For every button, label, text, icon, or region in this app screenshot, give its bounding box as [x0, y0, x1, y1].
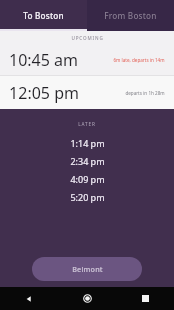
staticText: 4:09 pm [70, 173, 105, 185]
button[interactable]: Back [0, 287, 58, 310]
staticText: 5:20 pm [70, 191, 105, 203]
staticText: To Boston [23, 10, 64, 21]
button[interactable]: 12:05 pm [0, 76, 174, 109]
staticText: LATER [78, 121, 96, 127]
button[interactable]: 4:09 pm [0, 170, 174, 188]
button[interactable]: 5:20 pm [0, 188, 174, 206]
button[interactable]: Home [58, 287, 116, 310]
staticText: 10:45 am [9, 49, 78, 71]
staticText: 2:34 pm [70, 155, 105, 167]
button[interactable]: 10:45 am [0, 44, 174, 75]
button[interactable]: 2:34 pm [0, 152, 174, 170]
button[interactable]: Belmont [32, 257, 142, 281]
button[interactable]: Recent apps [116, 287, 174, 310]
staticText: departs in 1h 28m [125, 90, 165, 96]
staticText: Belmont [72, 264, 103, 274]
button[interactable]: To Boston [0, 0, 87, 31]
staticText: 6m late, departs in 14m [113, 57, 165, 63]
button[interactable]: 1:14 pm [0, 134, 174, 152]
staticText: 1:14 pm [70, 137, 105, 149]
staticText: 12:05 pm [9, 82, 79, 104]
button[interactable]: From Boston [87, 0, 174, 31]
staticText: From Boston [104, 10, 157, 21]
staticText: UPCOMING [71, 35, 104, 41]
